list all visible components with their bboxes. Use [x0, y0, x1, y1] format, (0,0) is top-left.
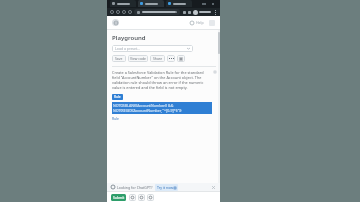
staticText: Submit	[113, 195, 125, 200]
staticText: Playground	[112, 34, 146, 42]
button[interactable]: Home	[127, 9, 133, 15]
button[interactable]: Share	[150, 55, 165, 62]
button[interactable]: Undo	[129, 194, 136, 201]
button[interactable]: History	[138, 194, 145, 201]
button[interactable]: Forward	[115, 9, 121, 15]
staticText: View code	[130, 56, 146, 61]
button[interactable]: Extensions	[182, 10, 187, 15]
staticText: Share	[153, 56, 163, 61]
staticText: Rule	[112, 116, 119, 121]
button[interactable]: Reload	[121, 9, 127, 15]
button[interactable]	[134, 9, 180, 15]
staticText: Save	[115, 56, 123, 61]
staticText: Load a preset...	[115, 46, 141, 51]
button[interactable]: Back	[109, 9, 115, 15]
button[interactable]: Settings	[147, 194, 154, 201]
staticText: Looking for ChatGPT?	[117, 185, 153, 190]
button[interactable]: Copy	[213, 70, 216, 73]
staticText: Help	[196, 20, 204, 25]
button[interactable]: Profile	[193, 10, 198, 15]
staticText: Create a Salesforce Validation Rule for …	[112, 70, 211, 90]
button[interactable]: Load a preset...	[112, 45, 193, 52]
button[interactable]: More	[167, 55, 175, 62]
button[interactable]: Settings	[177, 55, 185, 62]
button[interactable]: Submit	[111, 194, 126, 201]
button[interactable]: Try it now	[155, 184, 178, 191]
button[interactable]: Dismiss	[211, 185, 216, 190]
staticText: NOT(ISBLANK(AccountNumber)) && NOT(REGEX…	[113, 103, 211, 113]
staticText: Try it now	[157, 185, 173, 190]
button[interactable]: Save	[112, 55, 126, 62]
button[interactable]: View code	[128, 55, 148, 62]
button[interactable]: Account	[112, 19, 119, 26]
staticText: Rule	[114, 95, 121, 99]
button[interactable]: More options	[213, 10, 218, 15]
button[interactable]: Help	[188, 19, 206, 26]
button[interactable]: Bookmarks	[187, 10, 192, 15]
